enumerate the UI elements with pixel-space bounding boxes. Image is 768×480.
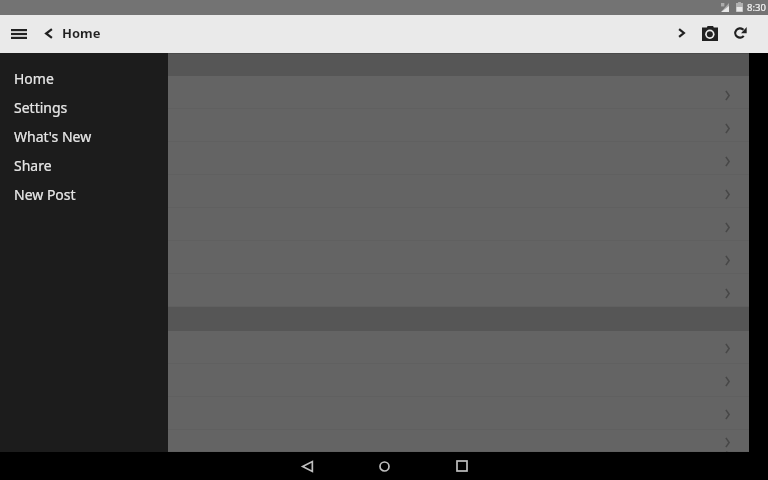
staticText: New Post <box>14 185 76 204</box>
button[interactable]: Back <box>37 14 61 52</box>
button[interactable]: Home <box>346 452 423 480</box>
button[interactable]: Home <box>0 64 168 93</box>
button[interactable] <box>0 364 749 397</box>
button[interactable]: Refresh <box>727 14 753 52</box>
staticText: Home <box>62 24 101 42</box>
button[interactable]: Open navigation drawer <box>0 15 38 53</box>
staticText: What's New <box>14 127 92 146</box>
button[interactable]: Settings <box>0 93 168 122</box>
staticText: Settings <box>14 98 68 117</box>
button[interactable]: Share <box>0 151 168 180</box>
button[interactable] <box>0 331 749 364</box>
button[interactable] <box>0 208 749 241</box>
staticText: Home <box>14 69 54 88</box>
button[interactable]: Forward <box>668 14 694 52</box>
button[interactable]: Camera <box>696 14 724 52</box>
button[interactable] <box>0 397 749 430</box>
button[interactable] <box>0 142 749 175</box>
button[interactable]: Back <box>269 452 346 480</box>
button[interactable] <box>0 241 749 274</box>
button[interactable]: Recents <box>423 452 500 480</box>
button[interactable] <box>0 430 749 452</box>
button[interactable] <box>0 175 749 208</box>
button[interactable] <box>0 76 749 109</box>
button[interactable]: What's New <box>0 122 168 151</box>
staticText: Share <box>14 156 52 175</box>
button[interactable] <box>0 109 749 142</box>
button[interactable] <box>0 274 749 307</box>
staticText: 8:30 <box>747 1 766 14</box>
button[interactable]: New Post <box>0 180 168 209</box>
